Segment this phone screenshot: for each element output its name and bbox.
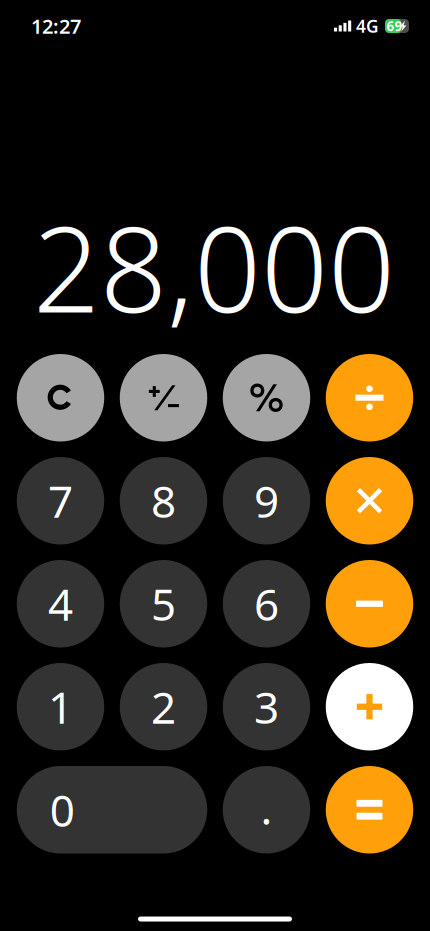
staticText: . [260,778,272,837]
staticText: 6 [254,574,279,633]
staticText: 4 [48,574,73,633]
button[interactable]: Divide [326,354,413,441]
button[interactable]: 5 [120,560,207,647]
button[interactable]: Minus [326,560,413,647]
staticText: 69 [386,17,402,35]
button[interactable]: Multiply [326,457,413,544]
button[interactable]: Plus [326,663,413,750]
button[interactable]: Percent [223,354,310,441]
button[interactable]: Plus minus [120,354,207,441]
button[interactable]: 1 [17,663,104,750]
button[interactable]: 6 [223,560,310,647]
button[interactable]: Clear [17,354,104,441]
staticText: 9 [254,471,279,530]
button[interactable]: Equals [326,766,413,853]
button[interactable]: 7 [17,457,104,544]
button[interactable]: 0 [17,766,207,853]
button[interactable]: 8 [120,457,207,544]
staticText: 3 [254,677,279,736]
button[interactable]: . [223,766,310,853]
staticText: 7 [48,471,73,530]
button[interactable]: 3 [223,663,310,750]
button[interactable]: 2 [120,663,207,750]
staticText: 5 [151,574,176,633]
button[interactable]: 4 [17,560,104,647]
staticText: 8 [151,471,176,530]
staticText: 12:27 [31,13,81,39]
staticText: 4G [356,14,379,37]
staticText: 28,000 [33,189,395,345]
staticText: 0 [50,780,75,839]
button[interactable]: 9 [223,457,310,544]
staticText: 1 [48,677,73,736]
staticText: 2 [151,677,176,736]
